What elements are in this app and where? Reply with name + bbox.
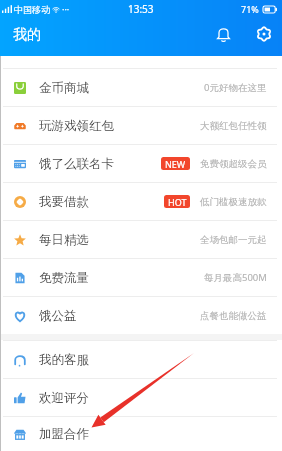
staticText: 玩游戏领红包 — [39, 118, 114, 134]
button[interactable]: 饿了么联名卡 — [0, 145, 282, 182]
staticText: 欢迎评分 — [39, 390, 89, 406]
button[interactable]: 加盟合作 — [0, 417, 282, 451]
staticText: 每月最高500M — [204, 271, 267, 284]
button[interactable]: 玩游戏领红包 — [0, 107, 282, 144]
staticText: 每日精选 — [39, 232, 89, 248]
staticText: 我的客服 — [39, 352, 89, 368]
staticText: 加盟合作 — [39, 426, 89, 442]
staticText: 饿公益 — [39, 308, 77, 324]
button[interactable]: Notifications — [208, 19, 238, 49]
staticText: 饿了么联名卡 — [39, 156, 114, 172]
button[interactable]: 欢迎评分 — [0, 379, 282, 416]
staticText: 71% — [241, 3, 259, 15]
staticText: 点餐也能做公益 — [200, 310, 267, 322]
button[interactable]: 金币商城 — [0, 69, 282, 106]
staticText: 免费领超级会员 — [200, 158, 267, 170]
staticText: 13:53 — [128, 2, 154, 16]
staticText: NEW — [165, 158, 186, 170]
staticText: 我要借款 — [39, 194, 89, 210]
staticText: 全场包邮一元起 — [200, 234, 267, 246]
staticText: 0元好物在这里 — [204, 81, 267, 94]
staticText: 大额红包任性领 — [200, 120, 267, 132]
staticText: HOT — [168, 196, 187, 208]
staticText: 中国移动 — [14, 4, 50, 15]
staticText: 我的 — [13, 26, 41, 44]
button[interactable]: 饿公益 — [0, 297, 282, 334]
button[interactable]: 我要借款 — [0, 183, 282, 220]
staticText: 金币商城 — [39, 80, 89, 96]
button[interactable]: 每日精选 — [0, 221, 282, 258]
button[interactable]: 我的客服 — [0, 341, 282, 378]
staticText: 低门槛极速放款 — [200, 196, 267, 208]
button[interactable]: 免费流量 — [0, 259, 282, 296]
staticText: 免费流量 — [39, 270, 89, 286]
staticText: ··· — [62, 3, 70, 15]
button[interactable]: Settings — [249, 19, 279, 49]
